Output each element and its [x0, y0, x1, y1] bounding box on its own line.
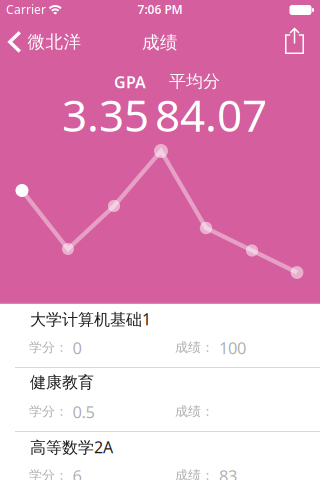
staticText: 高等数学2A — [30, 436, 113, 458]
staticText: 6 — [72, 464, 81, 480]
staticText: 学分： — [29, 403, 68, 419]
staticText: 成绩： — [175, 467, 214, 480]
staticText: 84.07 — [155, 85, 267, 144]
staticText: 3.35 — [62, 85, 149, 144]
staticText: 成绩： — [175, 403, 214, 419]
staticText: 83 — [219, 464, 237, 480]
staticText: 健康教育 — [30, 372, 94, 392]
staticText: 学分： — [29, 467, 68, 480]
staticText: 平均分 — [169, 71, 220, 92]
staticText: 学分： — [29, 339, 68, 355]
staticText: 大学计算机基础1 — [30, 308, 151, 330]
button[interactable]: 大学计算机基础1 — [0, 304, 320, 367]
staticText: 7:06 PM — [137, 1, 182, 17]
staticText: 成绩 — [142, 32, 178, 53]
staticText: 100 — [219, 336, 246, 359]
staticText: Carrier — [6, 1, 46, 17]
staticText: GPA — [114, 71, 146, 93]
staticText: 0.5 — [72, 400, 94, 423]
button[interactable]: 健康教育 — [0, 368, 320, 431]
button[interactable]: 微北洋 — [0, 0, 81, 53]
staticText: 微北洋 — [27, 31, 81, 53]
staticText: 成绩： — [175, 339, 214, 355]
button[interactable]: 高等数学2A — [0, 432, 320, 480]
button[interactable] — [0, 0, 304, 54]
staticText: 0 — [72, 336, 81, 359]
